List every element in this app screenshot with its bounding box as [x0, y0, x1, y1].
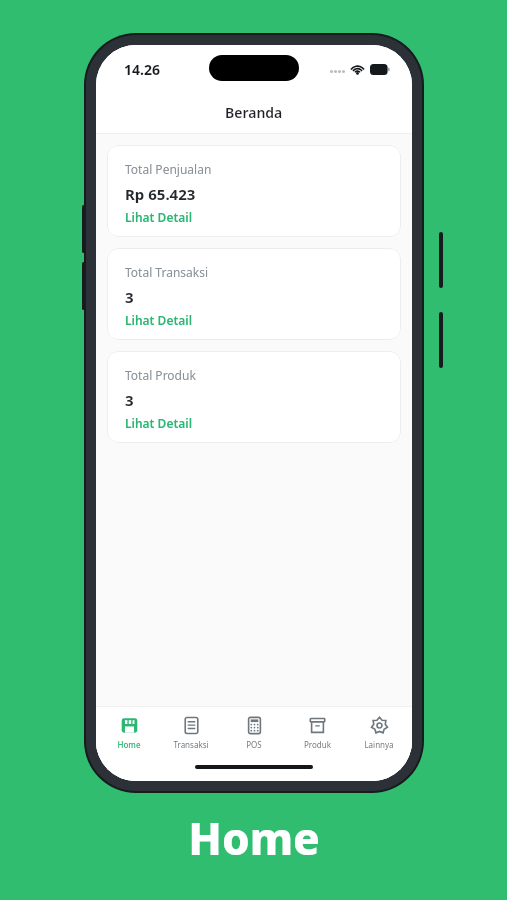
- button[interactable]: Total Penjualan: [107, 145, 401, 237]
- staticText: Lainnya: [364, 739, 394, 750]
- other: Transaksi: [182, 716, 201, 735]
- staticText: Total Produk: [125, 367, 196, 383]
- staticText: 3: [125, 390, 134, 410]
- other: Produk: [308, 716, 327, 735]
- staticText: 14.26: [124, 60, 160, 79]
- other: Lainnya: [370, 716, 389, 735]
- staticText: Rp 65.423: [125, 184, 196, 204]
- staticText: Transaksi: [173, 739, 209, 750]
- other: Home: [120, 716, 139, 735]
- button[interactable]: Lihat Detail: [125, 209, 193, 225]
- button[interactable]: POS: [224, 712, 284, 754]
- staticText: Home: [188, 808, 320, 868]
- button[interactable]: Lainnya: [349, 712, 409, 754]
- button[interactable]: Produk: [287, 712, 347, 754]
- button[interactable]: Lihat Detail: [125, 312, 193, 328]
- staticText: Beranda: [225, 103, 283, 122]
- staticText: Total Transaksi: [125, 264, 209, 280]
- button[interactable]: Home: [99, 712, 159, 754]
- staticText: Produk: [304, 739, 331, 750]
- button[interactable]: Lihat Detail: [125, 415, 193, 431]
- button[interactable]: Transaksi: [161, 712, 221, 754]
- other: POS: [245, 716, 264, 735]
- button[interactable]: Total Produk: [107, 351, 401, 443]
- button[interactable]: Total Transaksi: [107, 248, 401, 340]
- staticText: Home: [117, 739, 141, 750]
- staticText: POS: [246, 739, 262, 750]
- staticText: 3: [125, 287, 134, 307]
- staticText: Total Penjualan: [125, 161, 212, 177]
